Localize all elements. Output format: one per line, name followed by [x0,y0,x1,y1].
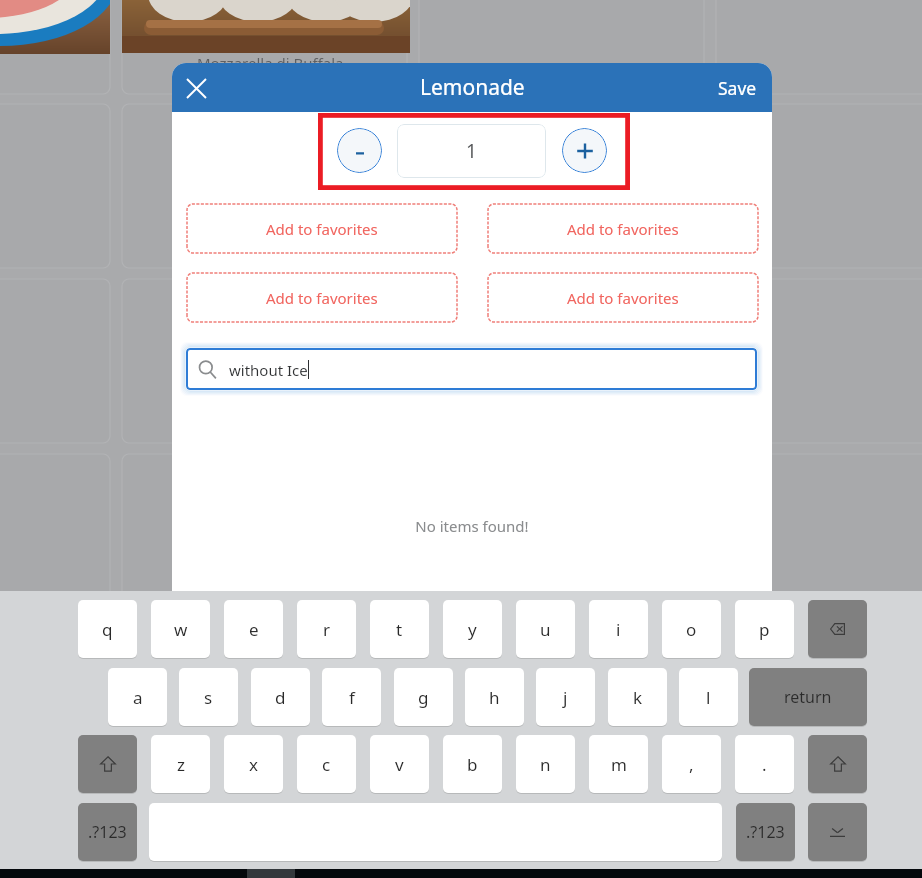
button[interactable]: Save [703,64,772,112]
button[interactable]: Add to favorites [187,204,457,253]
staticText: f [349,686,355,709]
staticText: w [174,618,188,641]
button[interactable]: Increase quantity [562,128,607,173]
button[interactable]: b [443,735,502,793]
staticText: Save [718,76,757,100]
staticText: m [611,753,627,776]
button[interactable]: e [224,600,283,658]
button[interactable]: o [662,600,721,658]
button[interactable]: x [224,735,283,793]
button[interactable]: z [151,735,210,793]
button[interactable]: a [108,668,167,726]
button[interactable]: .?123 [736,803,795,861]
staticText: c [322,753,331,776]
staticText: Add to favorites [266,219,378,239]
staticText: d [275,686,286,709]
staticText: o [686,618,697,641]
staticText: . [762,753,767,776]
button[interactable]: .?123 [78,803,137,861]
button[interactable]: y [443,600,502,658]
button[interactable]: Add to favorites [488,204,758,253]
staticText: v [395,753,404,776]
button[interactable]: g [394,668,453,726]
button[interactable]: q [78,600,137,658]
staticText: n [540,753,551,776]
staticText: h [489,686,500,709]
button[interactable]: j [536,668,595,726]
button[interactable]: n [516,735,575,793]
button[interactable]: v [370,735,429,793]
button[interactable]: u [516,600,575,658]
staticText: .?123 [746,821,785,843]
staticText: return [784,686,832,708]
button[interactable]: Shift [78,735,137,793]
staticText: p [759,618,770,641]
button[interactable]: k [608,668,667,726]
button[interactable]: m [589,735,648,793]
button[interactable]: d [251,668,310,726]
staticText: k [633,686,643,709]
staticText: Add to favorites [567,219,679,239]
staticText: No items found! [172,516,772,536]
button[interactable]: Add to favorites [488,273,758,322]
staticText: Add to favorites [567,288,679,308]
staticText: .?123 [88,821,127,843]
staticText: z [177,753,185,776]
button[interactable]: . [735,735,794,793]
button[interactable]: return [749,668,867,726]
staticText: x [249,753,258,776]
staticText: , [689,753,694,776]
button[interactable]: r [297,600,356,658]
button[interactable]: h [465,668,524,726]
staticText: Mozzarella di Buffala [197,53,344,73]
staticText: e [249,618,259,641]
staticText: y [468,618,477,641]
staticText: Lemonade [420,73,525,102]
button[interactable]: t [370,600,429,658]
staticText: q [102,618,113,641]
button[interactable]: w [151,600,210,658]
staticText: g [418,686,429,709]
button[interactable]: Shift [808,735,867,793]
button[interactable]: l [679,668,738,726]
button[interactable]: Add to favorites [187,273,457,322]
button[interactable]: p [735,600,794,658]
staticText: u [540,618,551,641]
staticText: Add to favorites [266,288,378,308]
button[interactable]: c [297,735,356,793]
button[interactable]: without Ice [186,348,757,390]
staticText: 1 [466,138,477,164]
button[interactable]: Backspace [808,600,867,658]
button[interactable]: Hide keyboard [808,803,867,861]
staticText: l [706,686,711,709]
staticText: t [396,618,403,641]
button[interactable]: Close [174,66,218,110]
staticText: s [204,686,213,709]
staticText: i [616,618,621,641]
button[interactable]: s [179,668,238,726]
staticText: without Ice [229,360,308,380]
button[interactable]: Decrease quantity [337,128,382,173]
staticText: r [323,618,331,641]
staticText: b [467,753,478,776]
button[interactable]: , [662,735,721,793]
button[interactable]: i [589,600,648,658]
button[interactable]: f [322,668,381,726]
staticText: j [563,686,568,709]
staticText: a [133,686,143,709]
